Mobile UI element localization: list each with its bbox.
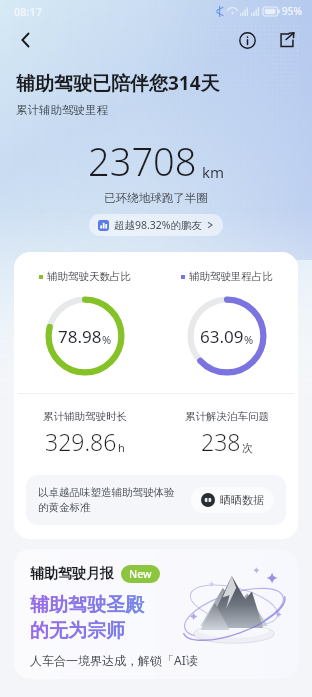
staticText: 329.86 bbox=[45, 426, 117, 457]
staticText: 已环绕地球跑了半圈 bbox=[0, 191, 312, 205]
staticText: 78.98 bbox=[58, 325, 102, 348]
staticText: 超越98.32%的鹏友 bbox=[114, 218, 203, 232]
staticText: h bbox=[118, 440, 125, 455]
staticText: 辅助驾驶天数占比 bbox=[47, 270, 131, 283]
button[interactable]: Share bbox=[270, 23, 304, 57]
staticText: 辅助驾驶月报 bbox=[30, 565, 114, 583]
staticText: 辅助驾驶已陪伴您314天 bbox=[16, 70, 220, 96]
staticText: km bbox=[202, 162, 225, 182]
staticText: 累计解决泊车问题 bbox=[185, 410, 269, 423]
button[interactable]: 晒晒数据 bbox=[191, 487, 274, 513]
staticText: 晒晒数据 bbox=[220, 493, 264, 507]
staticText: 08:17 bbox=[14, 4, 43, 19]
staticText: 以卓越品味塑造辅助驾驶体验 的黄金标准 bbox=[38, 486, 183, 514]
staticText: % bbox=[102, 332, 112, 347]
button[interactable]: Back bbox=[8, 22, 44, 58]
staticText: 累计辅助驾驶时长 bbox=[43, 410, 127, 423]
staticText: 辅助驾驶圣殿 bbox=[30, 593, 144, 617]
button[interactable]: 超越98.32%的鹏友 bbox=[89, 214, 223, 236]
button[interactable]: 累计解决泊车问题 bbox=[156, 410, 298, 457]
staticText: 的无为宗师 bbox=[30, 619, 125, 643]
staticText: 人车合一境界达成，解锁「AI读 bbox=[30, 652, 198, 668]
staticText: 238 bbox=[201, 426, 241, 457]
staticText: % bbox=[244, 332, 254, 347]
staticText: 辅助驾驶里程占比 bbox=[189, 270, 273, 283]
button[interactable]: Info bbox=[230, 23, 264, 57]
staticText: 95% bbox=[282, 4, 302, 18]
button[interactable]: 辅助驾驶天数占比 bbox=[14, 270, 156, 377]
staticText: 次 bbox=[242, 441, 253, 455]
button[interactable]: 辅助驾驶里程占比 bbox=[156, 270, 298, 377]
staticText: 累计辅助驾驶里程 bbox=[16, 103, 108, 117]
button[interactable]: 累计辅助驾驶时长 bbox=[14, 410, 156, 457]
staticText: 63.09 bbox=[200, 325, 244, 348]
staticText: New bbox=[129, 567, 152, 581]
staticText: 23708 bbox=[88, 135, 197, 187]
button[interactable]: 辅助驾驶月报 bbox=[14, 549, 298, 679]
